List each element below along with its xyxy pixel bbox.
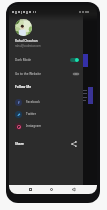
staticText: rahul@codestar.com bbox=[15, 44, 41, 48]
button[interactable]: Dark Mode bbox=[9, 54, 83, 66]
staticText: Instagram bbox=[26, 124, 42, 128]
staticText: Rahul Chauhan bbox=[15, 39, 38, 43]
staticText: Follow Me bbox=[15, 85, 32, 89]
staticText: Dark Mode bbox=[15, 58, 32, 62]
other: Share bbox=[71, 141, 77, 147]
staticText: Share bbox=[15, 142, 25, 146]
button[interactable]: Home bbox=[46, 185, 57, 194]
staticText: Facebook bbox=[26, 100, 40, 104]
button[interactable]: Recents bbox=[25, 185, 36, 194]
button[interactable]: f bbox=[9, 96, 83, 108]
staticText: f bbox=[18, 100, 20, 106]
button[interactable]: Go to the Website bbox=[9, 68, 83, 80]
button[interactable]: Twitter bbox=[9, 108, 83, 120]
staticText: Go to the Website bbox=[15, 72, 41, 76]
other: Open website bbox=[73, 72, 79, 76]
staticText: Twitter bbox=[26, 112, 37, 116]
button[interactable]: Instagram bbox=[9, 120, 83, 132]
button[interactable]: Back bbox=[68, 185, 79, 194]
button[interactable]: Share bbox=[9, 138, 83, 150]
